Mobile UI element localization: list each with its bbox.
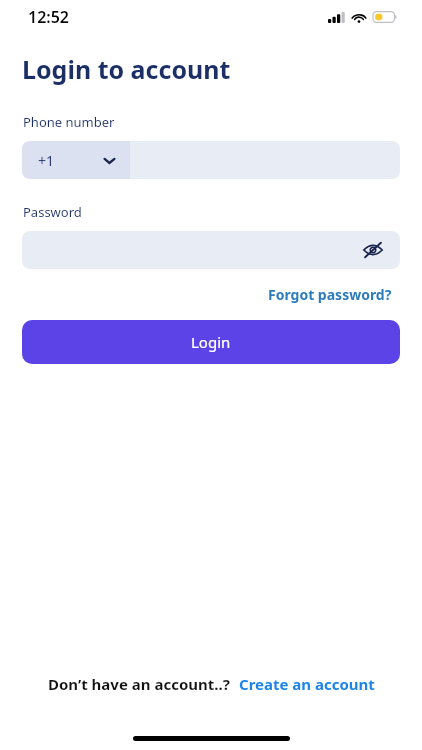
staticText: Password xyxy=(23,203,82,221)
button[interactable]: Forgot password? xyxy=(268,285,392,304)
button[interactable]: Show password xyxy=(358,235,388,265)
staticText: Don’t have an account..? xyxy=(48,674,230,694)
staticText: Forgot password? xyxy=(268,285,392,304)
staticText: 12:52 xyxy=(28,6,70,28)
staticText: Login to account xyxy=(22,52,231,86)
staticText: Phone number xyxy=(23,113,115,131)
button[interactable]: Show password xyxy=(22,231,400,269)
button[interactable]: +1 xyxy=(22,141,130,179)
staticText: +1 xyxy=(38,151,55,170)
staticText: Login xyxy=(191,332,231,352)
button[interactable]: Create an account xyxy=(239,674,375,694)
button[interactable]: Login xyxy=(22,320,400,364)
staticText: Create an account xyxy=(239,674,375,694)
